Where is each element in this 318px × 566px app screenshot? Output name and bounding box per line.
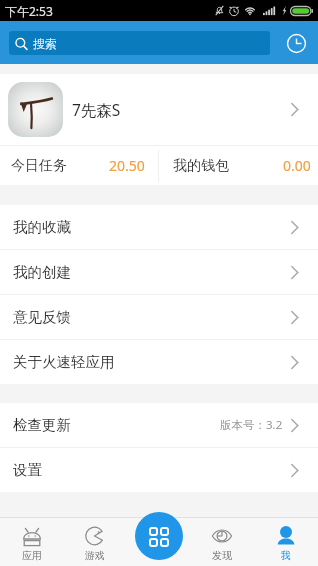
button[interactable]: 意见反馈 bbox=[0, 295, 318, 339]
button[interactable]: 应用 bbox=[0, 517, 63, 566]
button[interactable]: 游戏 bbox=[63, 517, 126, 566]
staticText: 20.50 bbox=[109, 156, 145, 175]
staticText: 游戏 bbox=[85, 549, 105, 562]
button[interactable]: 设置 bbox=[0, 448, 318, 492]
staticText: 下午2:53 bbox=[5, 3, 53, 19]
button[interactable]: 发现 bbox=[190, 517, 254, 566]
staticText: 我的收藏 bbox=[13, 218, 71, 236]
staticText: 今日任务 bbox=[11, 157, 67, 175]
button[interactable]: 我 bbox=[254, 517, 318, 566]
staticText: 我的钱包 bbox=[173, 157, 229, 175]
staticText: 意见反馈 bbox=[13, 308, 71, 326]
staticText: 发现 bbox=[212, 549, 232, 562]
staticText: 我 bbox=[281, 549, 291, 562]
button[interactable]: 我的创建 bbox=[0, 250, 318, 294]
staticText: 7先森S bbox=[72, 99, 121, 120]
button[interactable]: 关于火速轻应用 bbox=[0, 340, 318, 384]
button[interactable]: History bbox=[283, 30, 309, 56]
staticText: 我的创建 bbox=[13, 263, 71, 281]
button[interactable]: 7先森S bbox=[0, 74, 318, 145]
staticText: 搜索 bbox=[33, 36, 57, 51]
staticText: 关于火速轻应用 bbox=[13, 353, 115, 371]
button[interactable]: Apps bbox=[135, 512, 183, 560]
button[interactable]: 我的钱包 bbox=[159, 146, 318, 185]
staticText: 检查更新 bbox=[13, 416, 71, 434]
staticText: 应用 bbox=[22, 549, 42, 562]
staticText: 设置 bbox=[13, 461, 42, 479]
staticText: 0.00 bbox=[283, 156, 311, 175]
button[interactable]: 我的收藏 bbox=[0, 205, 318, 249]
button[interactable]: 今日任务 bbox=[0, 146, 158, 185]
button[interactable]: 检查更新 bbox=[0, 403, 318, 447]
button[interactable]: 搜索 bbox=[9, 31, 270, 55]
staticText: 版本号：3.2 bbox=[220, 417, 283, 433]
